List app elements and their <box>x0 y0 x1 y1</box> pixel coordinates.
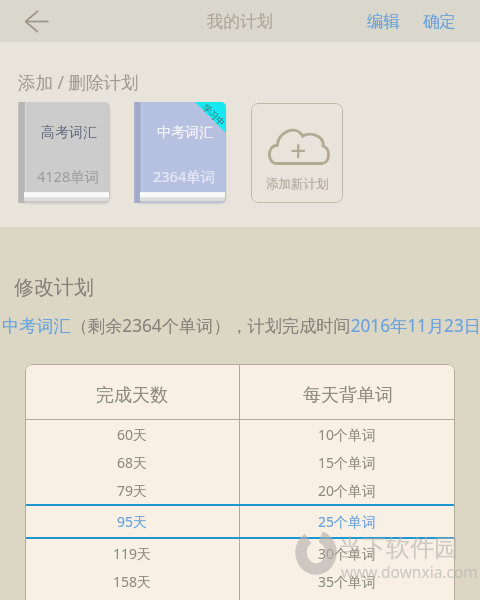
staticText: 35个单词 <box>318 572 377 591</box>
staticText: 每天背单词 <box>303 384 393 407</box>
button[interactable]: 95天 <box>25 504 455 539</box>
staticText: 60天 <box>117 425 148 444</box>
staticText: 158天 <box>113 572 152 591</box>
staticText: 95天 <box>117 512 148 531</box>
button[interactable]: 编辑 <box>361 3 406 40</box>
staticText: 编辑 <box>367 11 400 32</box>
staticText: 4128单词 <box>37 166 100 186</box>
button[interactable]: 119天 <box>25 539 455 567</box>
staticText: 学习中 <box>201 101 227 128</box>
button[interactable]: 68天 <box>25 448 455 476</box>
staticText: 确定 <box>423 11 456 32</box>
button[interactable]: 中考词汇 <box>134 102 226 203</box>
staticText: 2364单词 <box>153 166 216 186</box>
staticText: 我的计划 <box>207 11 273 32</box>
button[interactable]: 60天 <box>25 420 455 448</box>
button[interactable]: 158天 <box>25 567 455 595</box>
staticText: 完成天数 <box>96 384 168 407</box>
staticText: www.downxia.com <box>341 561 478 582</box>
staticText: 30个单词 <box>318 544 377 563</box>
staticText: 添加新计划 <box>266 176 329 192</box>
button[interactable]: Back <box>0 0 62 42</box>
staticText: 25个单词 <box>318 512 377 531</box>
button[interactable]: 高考词汇 <box>18 102 110 203</box>
staticText: 10个单词 <box>318 425 377 444</box>
button[interactable]: 79天 <box>25 476 455 504</box>
staticText: 79天 <box>117 481 148 500</box>
staticText: 中考词汇 <box>157 124 213 142</box>
button[interactable]: 确定 <box>417 3 462 40</box>
staticText: 119天 <box>113 544 152 563</box>
staticText: 20个单词 <box>318 481 377 500</box>
staticText: 添加 / 删除计划 <box>18 70 139 94</box>
staticText: 15个单词 <box>318 453 377 472</box>
staticText: 当下软件园 <box>338 533 458 563</box>
staticText: 68天 <box>117 453 148 472</box>
staticText: 中考词汇（剩余2364个单词），计划完成时间2016年11月23日 <box>2 314 480 337</box>
staticText: 修改计划 <box>14 275 94 300</box>
button[interactable]: 添加新计划 <box>251 103 343 203</box>
staticText: 高考词汇 <box>41 124 97 142</box>
